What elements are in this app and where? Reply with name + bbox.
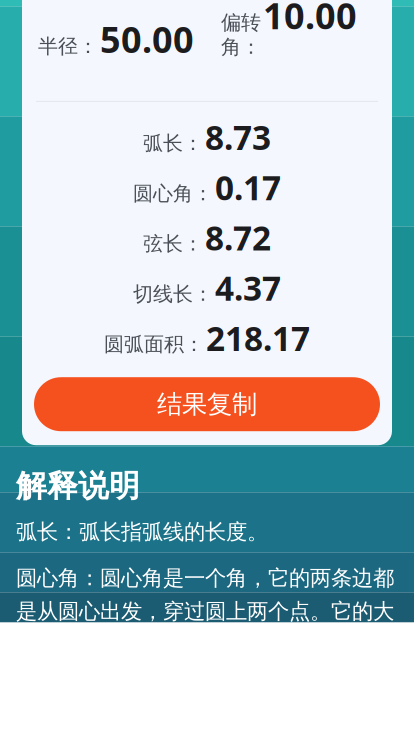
staticText: 弦长： xyxy=(143,231,203,256)
staticText: 偏转角： xyxy=(221,10,261,59)
staticText: 半径： xyxy=(38,34,98,59)
staticText: 结果复制 xyxy=(157,389,257,420)
staticText: 圆心角：圆心角是一个角，它的两条边都是从圆心出发，穿过圆上两个点。它的大小等于对… xyxy=(16,565,394,658)
button[interactable]: 结果复制 xyxy=(34,377,380,431)
staticText: 10.00 xyxy=(263,0,357,39)
staticText: 8.73 xyxy=(205,115,271,159)
staticText: 0.17 xyxy=(215,165,281,209)
staticText: 50.00 xyxy=(100,15,194,63)
staticText: 圆心角： xyxy=(133,181,213,206)
staticText: 8.72 xyxy=(205,215,271,260)
staticText: 弦长：弦长是圆上的任意两个点之间的线段的长度。 xyxy=(16,678,394,736)
staticText: 218.17 xyxy=(206,316,310,360)
staticText: 圆弧面积： xyxy=(104,332,204,357)
staticText: 解释说明 xyxy=(16,467,140,505)
staticText: 弧长： xyxy=(143,131,203,156)
staticText: 弧长：弧长指弧线的长度。 xyxy=(16,519,268,545)
staticText: 切线长： xyxy=(133,282,213,306)
staticText: 4.37 xyxy=(215,266,281,310)
